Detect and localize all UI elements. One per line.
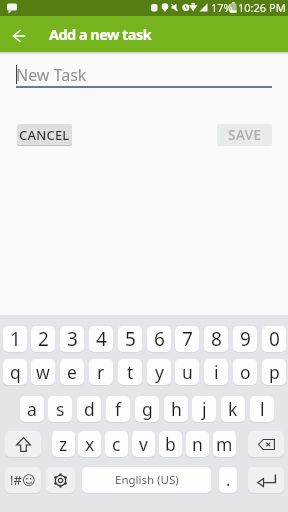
staticText: y (155, 360, 164, 384)
button[interactable]: English (US) (82, 467, 211, 493)
staticText: q (10, 360, 21, 384)
staticText: f (115, 397, 122, 421)
staticText: p (269, 360, 280, 384)
staticText: n (192, 432, 203, 456)
staticText: . (226, 469, 231, 491)
staticText: b (165, 432, 176, 456)
button[interactable]: r (89, 359, 113, 385)
staticText: 6 (154, 326, 165, 352)
staticText: i (214, 360, 219, 384)
staticText: 2 (38, 326, 49, 352)
staticText: 17% (211, 0, 233, 15)
button[interactable]: p (262, 359, 286, 385)
button[interactable] (248, 467, 284, 493)
button[interactable]: CANCEL (17, 124, 72, 145)
staticText: x (85, 432, 95, 456)
button[interactable]: t (118, 359, 142, 385)
button[interactable]: 8 (204, 326, 228, 352)
staticText: r (97, 360, 105, 384)
staticText: m (216, 432, 233, 456)
button[interactable]: i (204, 359, 228, 385)
button[interactable]: 3 (60, 326, 84, 352)
button[interactable]: . (219, 467, 237, 493)
staticText: v (139, 432, 148, 456)
staticText: English (US) (115, 472, 179, 488)
button[interactable]: u (175, 359, 199, 385)
button[interactable]: 4 (89, 326, 113, 352)
staticText: j (202, 397, 207, 421)
staticText: !#☺ (10, 471, 36, 489)
button[interactable]: y (147, 359, 171, 385)
button[interactable]: e (60, 359, 84, 385)
button[interactable]: h (164, 396, 188, 422)
button[interactable]: n (186, 431, 209, 457)
button[interactable]: f (106, 396, 130, 422)
button[interactable]: x (78, 431, 101, 457)
staticText: 9 (240, 326, 251, 352)
button[interactable]: a (20, 396, 44, 422)
button[interactable]: 7 (175, 326, 199, 352)
staticText: k (228, 397, 238, 421)
button[interactable]: c (105, 431, 128, 457)
button[interactable]: k (221, 396, 245, 422)
button[interactable]: 5 (118, 326, 142, 352)
button[interactable]: z (52, 431, 75, 457)
button[interactable] (46, 467, 75, 493)
staticText: s (56, 397, 65, 421)
button[interactable] (6, 23, 32, 49)
staticText: Add a new task (49, 24, 152, 44)
staticText: 0 (269, 326, 280, 352)
staticText: t (127, 360, 134, 384)
button[interactable]: l (250, 396, 274, 422)
staticText: d (84, 397, 95, 421)
staticText: 8 (211, 326, 222, 352)
button[interactable]: 2 (31, 326, 55, 352)
staticText: e (67, 360, 77, 384)
staticText: 10:26 PM (238, 0, 286, 15)
staticText: 4 (96, 326, 107, 352)
staticText: 5 (125, 326, 136, 352)
button[interactable]: d (77, 396, 101, 422)
button[interactable]: g (135, 396, 159, 422)
staticText: 3 (67, 326, 78, 352)
staticText: SAVE (228, 126, 262, 144)
staticText: CANCEL (19, 126, 70, 144)
button[interactable]: q (3, 359, 27, 385)
staticText: New Task (16, 64, 87, 86)
staticText: c (112, 432, 121, 456)
button[interactable]: 0 (262, 326, 286, 352)
staticText: l (260, 397, 265, 421)
button[interactable]: v (132, 431, 155, 457)
button[interactable]: 9 (233, 326, 257, 352)
button[interactable]: !#☺ (5, 467, 41, 493)
button[interactable]: o (233, 359, 257, 385)
button[interactable]: b (159, 431, 182, 457)
staticText: u (182, 360, 193, 384)
button[interactable]: w (31, 359, 55, 385)
button[interactable]: s (48, 396, 72, 422)
staticText: w (36, 360, 50, 384)
button[interactable] (5, 431, 41, 457)
staticText: h (171, 397, 182, 421)
staticText: o (240, 360, 251, 384)
staticText: z (59, 432, 68, 456)
button[interactable]: 6 (147, 326, 171, 352)
staticText: 7 (182, 326, 193, 352)
staticText: g (142, 397, 153, 421)
button[interactable]: 1 (3, 326, 27, 352)
staticText: 1 (10, 326, 21, 352)
button[interactable] (248, 431, 284, 457)
staticText: a (27, 397, 37, 421)
button[interactable]: m (213, 431, 236, 457)
button[interactable]: j (192, 396, 216, 422)
button[interactable]: SAVE (217, 124, 272, 146)
